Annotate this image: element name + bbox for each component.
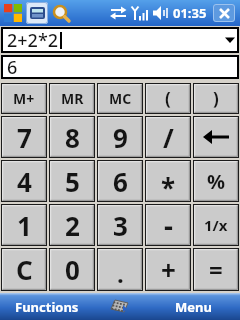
staticText: 0 <box>65 252 80 287</box>
button[interactable]: 2+2*2 <box>1 27 239 53</box>
button[interactable] <box>26 2 48 24</box>
button[interactable]: . <box>97 248 143 291</box>
button[interactable] <box>111 299 129 314</box>
staticText: * <box>161 170 176 205</box>
staticText: . <box>117 257 124 290</box>
staticText: 01:35 <box>173 4 207 22</box>
button[interactable]: * <box>145 160 191 202</box>
staticText: 9 <box>113 120 128 155</box>
staticText: 6 <box>113 164 128 199</box>
staticText: 2 <box>65 208 80 243</box>
staticText: = <box>209 253 223 286</box>
button[interactable]: Menu <box>175 298 240 316</box>
button[interactable]: Functions <box>0 298 79 316</box>
staticText: + <box>161 252 176 287</box>
button[interactable]: 1/x <box>193 204 239 246</box>
staticText: - <box>164 206 173 244</box>
staticText: / <box>163 120 174 155</box>
button[interactable]: ) <box>193 83 239 114</box>
staticText: 4 <box>17 164 32 199</box>
staticText: MR <box>61 89 84 108</box>
staticText: C <box>16 252 33 287</box>
button[interactable]: 5 <box>49 160 95 202</box>
staticText: 1/x <box>204 215 228 235</box>
button[interactable]: 4 <box>1 160 47 202</box>
staticText: 7 <box>17 120 32 155</box>
staticText: Functions <box>15 298 79 316</box>
button[interactable]: + <box>145 248 191 291</box>
button[interactable]: % <box>193 160 239 202</box>
button[interactable]: MC <box>97 83 143 114</box>
staticText: ) <box>213 87 219 110</box>
button[interactable]: 6 <box>97 160 143 202</box>
button[interactable]: 0 <box>49 248 95 291</box>
staticText: 3 <box>113 208 128 243</box>
button[interactable] <box>213 4 235 22</box>
button[interactable]: 9 <box>97 116 143 158</box>
button[interactable]: = <box>193 248 239 291</box>
staticText: M+ <box>13 89 35 108</box>
button[interactable]: 3 <box>97 204 143 246</box>
button[interactable] <box>193 116 239 158</box>
staticText: Menu <box>175 298 212 316</box>
button[interactable]: 7 <box>1 116 47 158</box>
button[interactable]: MR <box>49 83 95 114</box>
button[interactable]: 8 <box>49 116 95 158</box>
button[interactable]: C <box>1 248 47 291</box>
staticText: 2+2*2 <box>7 28 59 53</box>
button[interactable]: M+ <box>1 83 47 114</box>
staticText: 6 <box>7 55 18 79</box>
button[interactable]: / <box>145 116 191 158</box>
button[interactable]: 1 <box>1 204 47 246</box>
staticText: 5 <box>65 164 80 199</box>
button[interactable]: 2 <box>49 204 95 246</box>
staticText: % <box>207 168 226 195</box>
staticText: 8 <box>65 120 80 155</box>
button[interactable]: - <box>145 204 191 246</box>
staticText: MC <box>109 89 132 108</box>
button[interactable]: ( <box>145 83 191 114</box>
staticText: 1 <box>17 208 32 243</box>
staticText: ( <box>165 87 171 110</box>
